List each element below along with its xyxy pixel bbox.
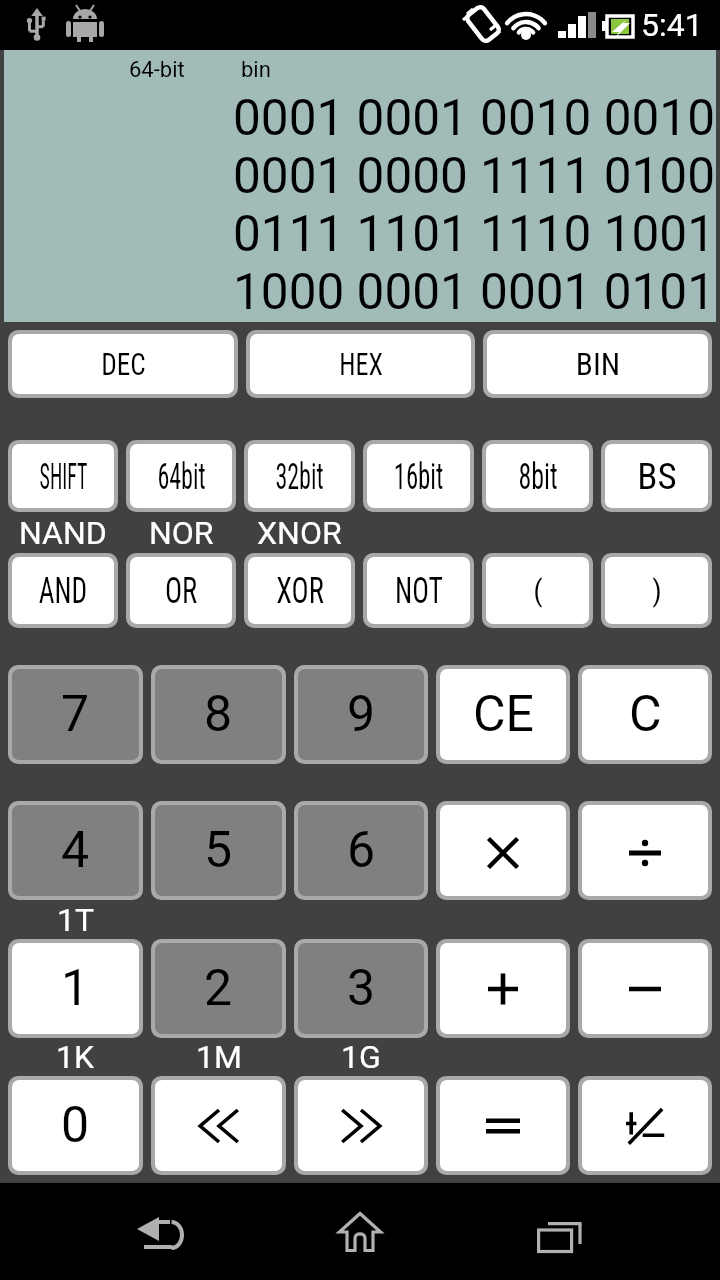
button[interactable]: NOT bbox=[367, 557, 470, 624]
staticText: 0 bbox=[61, 1096, 90, 1155]
button[interactable]: 64bit bbox=[130, 444, 232, 508]
staticText: 1K bbox=[56, 1038, 95, 1076]
staticText: SHIFT bbox=[39, 455, 88, 498]
staticText: 1 bbox=[61, 959, 90, 1018]
staticText: BS bbox=[637, 455, 677, 498]
button[interactable] bbox=[582, 805, 708, 896]
button[interactable]: BIN bbox=[487, 334, 708, 394]
button[interactable] bbox=[440, 805, 566, 896]
staticText: AND bbox=[39, 569, 87, 612]
button[interactable]: 0 bbox=[12, 1080, 139, 1171]
staticText: 0001 0001 0010 0010 bbox=[233, 89, 715, 147]
staticText: 2 bbox=[204, 959, 233, 1018]
staticText: BIN bbox=[576, 346, 620, 382]
button[interactable]: XOR bbox=[248, 557, 351, 624]
button[interactable]: 2 bbox=[155, 943, 282, 1034]
button[interactable] bbox=[582, 1080, 708, 1171]
staticText: 1T bbox=[57, 901, 95, 939]
staticText: NAND bbox=[19, 514, 107, 552]
staticText: C bbox=[629, 685, 662, 744]
staticText: XOR bbox=[276, 569, 324, 612]
staticText: CE bbox=[473, 685, 534, 744]
button[interactable]: SHIFT bbox=[12, 444, 114, 508]
staticText: 1M bbox=[196, 1038, 242, 1076]
staticText: 1G bbox=[341, 1038, 381, 1076]
button[interactable] bbox=[440, 1080, 566, 1171]
staticText: 8bit bbox=[518, 455, 558, 498]
staticText: 5 bbox=[204, 821, 233, 880]
staticText: XNOR bbox=[257, 514, 342, 552]
button[interactable]: DEC bbox=[12, 334, 234, 394]
button[interactable]: 3 bbox=[298, 943, 424, 1034]
button[interactable]: BS bbox=[605, 444, 708, 508]
staticText: OR bbox=[165, 569, 197, 612]
button[interactable]: 16bit bbox=[367, 444, 470, 508]
button[interactable]: Home bbox=[300, 1183, 420, 1280]
staticText: 4 bbox=[61, 821, 90, 880]
staticText: HEX bbox=[339, 346, 383, 382]
button[interactable]: 6 bbox=[298, 805, 424, 896]
button[interactable]: HEX bbox=[250, 334, 471, 394]
button[interactable]: ( bbox=[486, 557, 589, 624]
button[interactable] bbox=[440, 943, 566, 1034]
staticText: ) bbox=[652, 573, 662, 608]
button[interactable]: ) bbox=[605, 557, 708, 624]
button[interactable]: 9 bbox=[298, 669, 424, 760]
staticText: 32bit bbox=[275, 455, 324, 498]
button[interactable]: CE bbox=[440, 669, 566, 760]
staticText: 6 bbox=[347, 821, 376, 880]
staticText: 1000 0001 0001 0101 bbox=[233, 263, 715, 321]
staticText: ( bbox=[533, 573, 543, 608]
button[interactable]: OR bbox=[130, 557, 232, 624]
button[interactable]: 32bit bbox=[248, 444, 351, 508]
staticText: DEC bbox=[101, 346, 146, 382]
staticText: NOR bbox=[149, 514, 214, 552]
staticText: 0001 0000 1111 0100 bbox=[233, 147, 715, 205]
staticText: 64-bit bbox=[129, 57, 185, 83]
button[interactable]: 7 bbox=[12, 669, 139, 760]
staticText: 3 bbox=[347, 959, 376, 1018]
button[interactable]: C bbox=[582, 669, 708, 760]
staticText: 7 bbox=[61, 685, 90, 744]
button[interactable]: Back bbox=[100, 1183, 220, 1280]
button[interactable]: 1 bbox=[12, 943, 139, 1034]
staticText: 16bit bbox=[393, 455, 444, 498]
button[interactable] bbox=[298, 1080, 424, 1171]
button[interactable]: 4 bbox=[12, 805, 139, 896]
staticText: 64bit bbox=[157, 455, 206, 498]
staticText: bin bbox=[241, 57, 271, 83]
staticText: NOT bbox=[395, 569, 443, 612]
staticText: 8 bbox=[204, 685, 233, 744]
staticText: 5:41 bbox=[641, 6, 703, 44]
button[interactable]: 8 bbox=[155, 669, 282, 760]
button[interactable]: AND bbox=[12, 557, 114, 624]
button[interactable]: 5 bbox=[155, 805, 282, 896]
staticText: 9 bbox=[347, 685, 376, 744]
staticText: 0111 1101 1110 1001 bbox=[233, 205, 715, 263]
button[interactable]: Recent apps bbox=[500, 1183, 620, 1280]
button[interactable]: 8bit bbox=[486, 444, 589, 508]
button[interactable] bbox=[582, 943, 708, 1034]
button[interactable] bbox=[155, 1080, 282, 1171]
